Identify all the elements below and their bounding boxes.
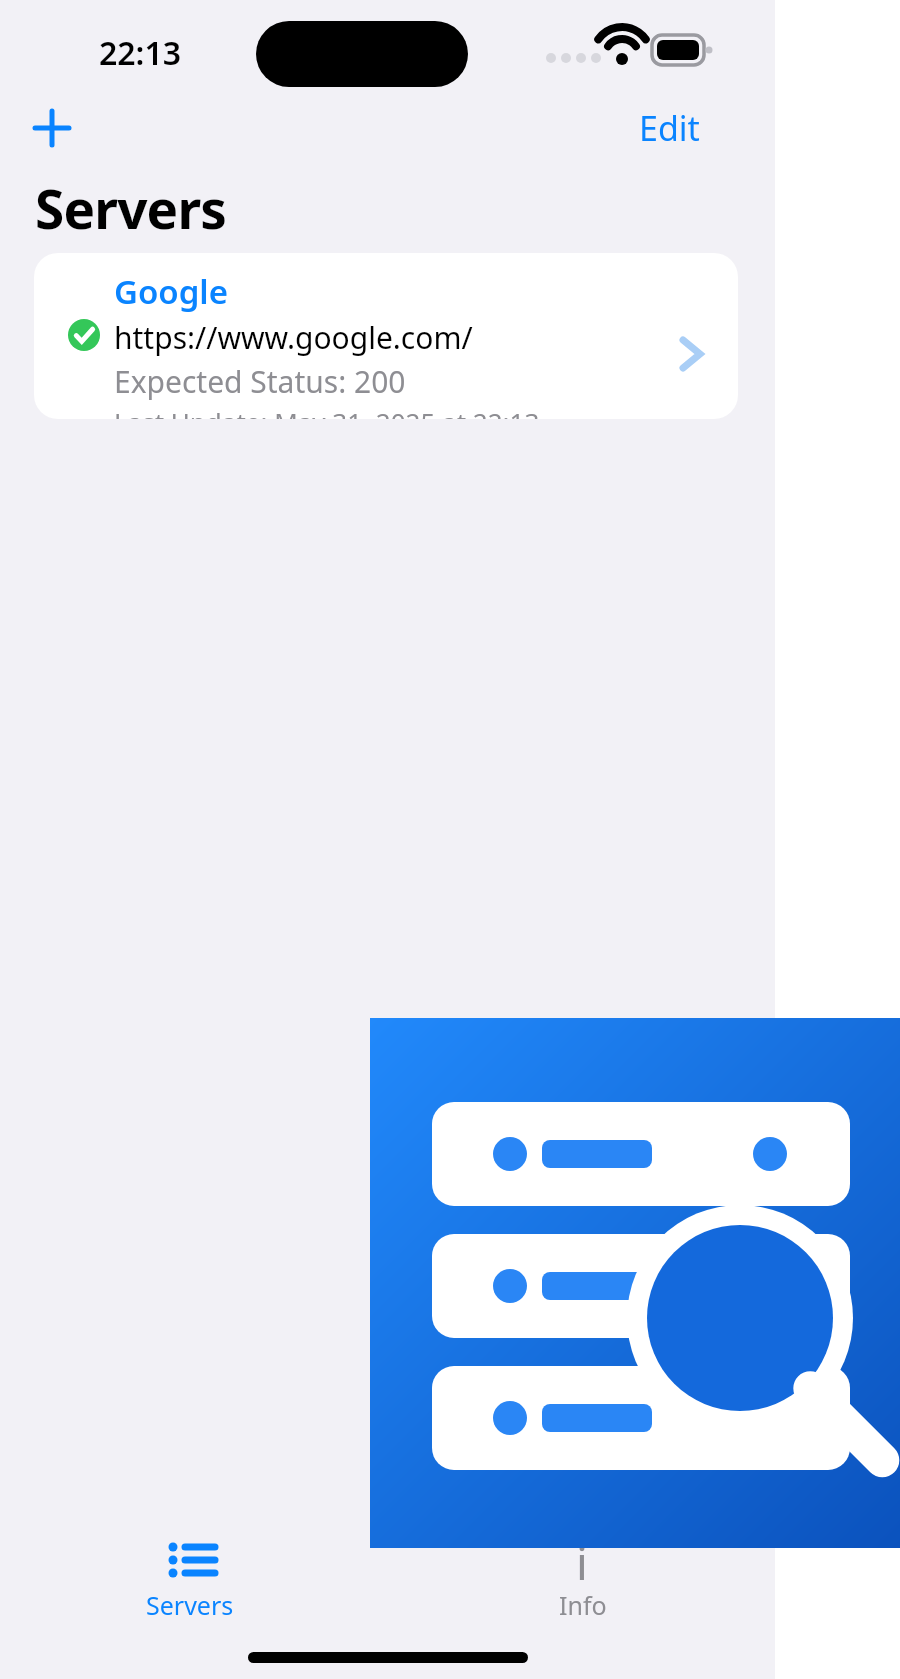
button[interactable]: Add server [22,100,82,156]
staticText: i [576,1531,588,1594]
button[interactable]: Edit [620,100,718,156]
staticText: Info [559,1588,607,1622]
staticText: Expected Status: 200 [114,361,406,402]
button[interactable]: Google [34,253,738,419]
button[interactable]: Servers [96,1528,290,1632]
staticText: 22:13 [99,31,182,75]
staticText: Servers [146,1588,234,1622]
staticText: Servers [35,172,227,244]
button[interactable]: i [485,1528,679,1632]
staticText: Edit [639,105,700,151]
staticText: https://www.google.com/ [114,317,473,358]
staticText: Google [114,269,228,314]
staticText: Last Update: May 31, 2025 at 22:13 [114,404,540,419]
